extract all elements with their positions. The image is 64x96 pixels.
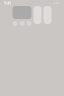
- staticText: 9:41: [4, 0, 11, 6]
- staticText: •••: [54, 0, 60, 6]
